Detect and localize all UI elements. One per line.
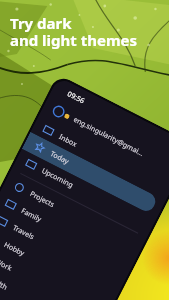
button[interactable]: Work [0, 240, 104, 300]
staticText: Try dark [10, 13, 72, 33]
button[interactable]: eng.singularity@gmai... [51, 103, 169, 179]
staticText: Work [0, 257, 14, 274]
button[interactable]: Travels [0, 206, 121, 288]
staticText: Upcoming [40, 166, 75, 190]
button[interactable]: Hobby [0, 223, 112, 300]
staticText: 09:56 [65, 89, 86, 106]
staticText: Hobby [2, 240, 26, 259]
staticText: and light themes [10, 30, 138, 50]
button[interactable]: Today [22, 132, 159, 214]
staticText: Health [0, 274, 9, 293]
button[interactable]: Upcoming [13, 149, 150, 231]
staticText: Projects [28, 189, 57, 210]
button[interactable]: Inbox [30, 115, 167, 197]
button[interactable]: Projects [1, 172, 138, 254]
button[interactable]: Family [0, 189, 129, 271]
staticText: Travels [11, 223, 36, 242]
button[interactable]: Health [0, 257, 95, 300]
button[interactable]: Housekeeping [0, 273, 86, 300]
staticText: eng.singularity@gmai... [71, 115, 145, 159]
staticText: Inbox [57, 132, 79, 150]
staticText: Today [48, 149, 71, 167]
staticText: Family [19, 206, 43, 225]
